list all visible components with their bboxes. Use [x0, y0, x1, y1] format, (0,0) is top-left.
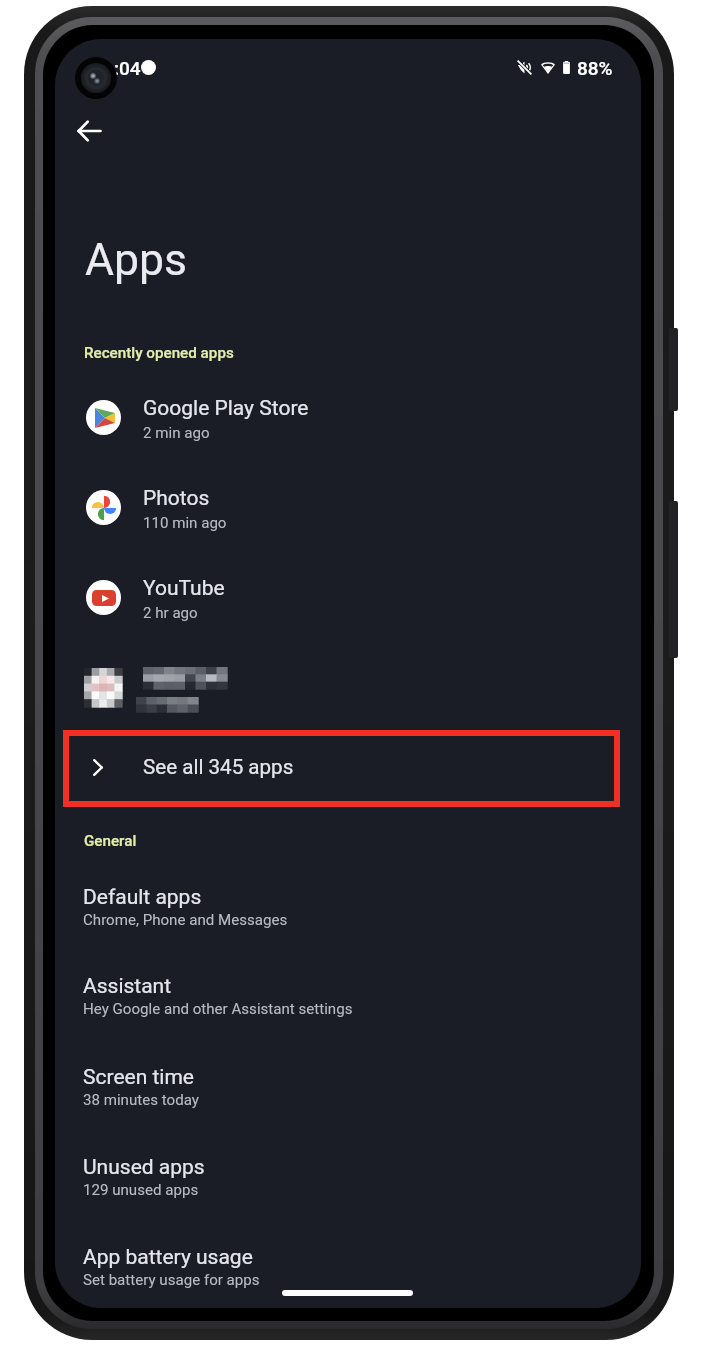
- staticText: Apps: [85, 234, 187, 286]
- staticText: :04: [114, 57, 141, 79]
- button[interactable]: Assistant: [55, 974, 641, 1018]
- staticText: General: [84, 832, 137, 850]
- staticText: 88%: [577, 57, 613, 79]
- staticText: YouTube: [143, 576, 225, 601]
- button[interactable]: YouTube: [55, 565, 641, 633]
- staticText: Chrome, Phone and Messages: [83, 911, 288, 929]
- button[interactable]: See all 345 apps: [63, 730, 620, 807]
- staticText: Set battery usage for apps: [83, 1271, 260, 1289]
- staticText: 38 minutes today: [83, 1091, 199, 1109]
- staticText: 2 hr ago: [143, 604, 198, 622]
- button[interactable]: Photos: [55, 475, 641, 543]
- staticText: Google Play Store: [143, 396, 309, 421]
- button[interactable]: Navigate back: [65, 107, 113, 155]
- staticText: Assistant: [83, 974, 172, 999]
- staticText: 129 unused apps: [83, 1181, 199, 1199]
- staticText: Screen time: [83, 1065, 194, 1090]
- button[interactable]: Google Play Store: [55, 385, 641, 453]
- staticText: See all 345 apps: [143, 755, 294, 779]
- button[interactable]: App battery usage: [55, 1245, 641, 1289]
- staticText: Default apps: [83, 885, 202, 910]
- staticText: Recently opened apps: [84, 344, 234, 362]
- staticText: Unused apps: [83, 1155, 205, 1180]
- staticText: 2 min ago: [143, 424, 210, 442]
- button[interactable]: Screen time: [55, 1065, 641, 1109]
- button[interactable]: Default apps: [55, 885, 641, 929]
- staticText: App battery usage: [83, 1245, 253, 1270]
- staticText: Photos: [143, 486, 210, 511]
- staticText: Hey Google and other Assistant settings: [83, 1000, 353, 1018]
- button[interactable]: Unused apps: [55, 1155, 641, 1199]
- staticText: 110 min ago: [143, 514, 227, 532]
